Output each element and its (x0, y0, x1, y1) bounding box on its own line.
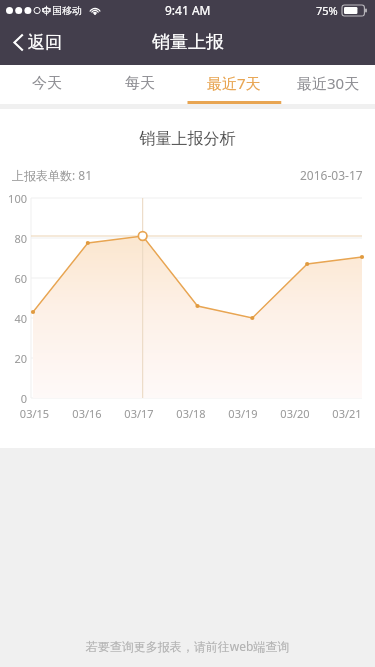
other: Back (13, 33, 24, 52)
staticText: 03/16 (61, 406, 113, 421)
staticText: 03/17 (113, 406, 165, 421)
staticText: 0 (2, 391, 27, 406)
staticText: 销量上报分析 (0, 129, 375, 149)
staticText: 每天 (125, 74, 155, 93)
staticText: 9:41 AM (165, 2, 211, 18)
button[interactable]: Back (0, 20, 76, 65)
staticText: 中国移动 (42, 4, 82, 17)
staticText: 返回 (28, 32, 62, 53)
button[interactable]: 最近7天 (187, 65, 281, 101)
staticText: 100 (2, 191, 27, 206)
staticText: 80 (2, 231, 27, 246)
staticText: 2016-03-17 (300, 167, 363, 183)
staticText: 最近30天 (297, 73, 360, 93)
staticText: 03/18 (165, 406, 217, 421)
staticText: 03/21 (321, 406, 373, 421)
button[interactable]: 每天 (93, 65, 187, 101)
staticText: 最近7天 (207, 73, 261, 93)
button[interactable]: 今天 (0, 65, 93, 101)
staticText: 03/20 (269, 406, 321, 421)
staticText: 40 (2, 311, 27, 326)
staticText: 03/19 (217, 406, 269, 421)
staticText: 75% (316, 3, 338, 18)
staticText: 今天 (32, 74, 62, 93)
button[interactable]: 最近30天 (281, 65, 375, 101)
staticText: 60 (2, 271, 27, 286)
staticText: 03/15 (8, 406, 61, 421)
staticText: 20 (2, 351, 27, 366)
staticText: 上报表单数: 81 (12, 167, 93, 183)
staticText: 销量上报 (152, 31, 224, 54)
staticText: 若要查询更多报表，请前往web端查询 (0, 638, 375, 654)
